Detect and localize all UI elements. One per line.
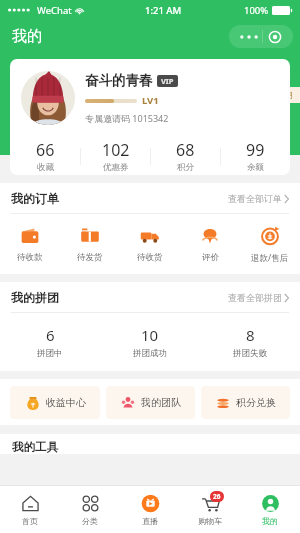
staticText: 专属邀请码 1015342	[85, 112, 169, 124]
staticText: 我的	[12, 27, 42, 46]
button[interactable]: 26	[180, 486, 240, 533]
staticText: 我的	[262, 516, 278, 526]
button[interactable]: 查看全部拼团	[228, 292, 289, 303]
button[interactable]: 6	[0, 313, 100, 371]
button[interactable]: 首页	[0, 486, 60, 533]
staticText: 26	[213, 492, 221, 501]
staticText: 我的拼团	[11, 290, 59, 305]
staticText: LV1	[142, 94, 159, 107]
staticText: 积分兑换	[236, 396, 276, 409]
staticText: 收藏	[37, 162, 54, 173]
staticText: 购物车	[198, 516, 222, 526]
staticText: 奋斗的青春	[85, 72, 153, 89]
staticText: 余额	[247, 162, 264, 173]
button[interactable]: 积分兑换	[201, 386, 290, 419]
button[interactable]: 查看全部订单	[228, 193, 289, 204]
button[interactable]: 评价	[180, 214, 240, 274]
button[interactable]: 66	[10, 137, 80, 175]
button[interactable]: 8	[200, 313, 300, 371]
staticText: 6	[46, 325, 55, 345]
staticText: 拼团成功	[133, 348, 167, 359]
staticText: 8	[246, 325, 255, 345]
staticText: 拼团失败	[233, 348, 267, 359]
staticText: 分类	[82, 516, 98, 526]
staticText: 积分	[177, 162, 194, 173]
button[interactable]: 我的	[240, 486, 300, 533]
staticText: 查看全部订单	[228, 193, 282, 204]
button[interactable]: 我的团队	[106, 386, 195, 419]
staticText: 等级说明	[261, 90, 293, 100]
staticText: 首页	[22, 516, 38, 526]
button[interactable]: 待发货	[60, 214, 120, 274]
button[interactable]: 退款/售后	[240, 214, 300, 274]
staticText: 退款/售后	[251, 252, 289, 264]
button[interactable]: Mini program menu	[229, 25, 293, 48]
staticText: 待收款	[17, 252, 43, 263]
staticText: 68	[176, 139, 195, 161]
staticText: 收益中心	[46, 396, 86, 409]
staticText: 待收货	[137, 252, 163, 263]
button[interactable]: 99	[221, 137, 290, 175]
staticText: VIP	[161, 76, 174, 86]
staticText: 我的团队	[141, 396, 181, 409]
staticText: 我的订单	[11, 191, 59, 206]
staticText: 我的工具	[12, 440, 58, 454]
staticText: 66	[36, 139, 55, 161]
button[interactable]: 等级说明	[253, 87, 300, 103]
button[interactable]: 收益中心	[10, 386, 100, 419]
staticText: 拼团中	[37, 348, 63, 359]
staticText: 10	[141, 325, 159, 345]
button[interactable]: 68	[151, 137, 220, 175]
button[interactable]: 待收款	[0, 214, 60, 274]
button[interactable]: 直播	[120, 486, 180, 533]
button[interactable]: 102	[81, 137, 150, 175]
staticText: WeChat	[37, 4, 72, 17]
button[interactable]: 分类	[60, 486, 120, 533]
staticText: 待发货	[77, 252, 103, 263]
button[interactable]: 待收货	[120, 214, 180, 274]
staticText: 99	[246, 139, 265, 161]
staticText: 102	[102, 139, 130, 161]
staticText: 100%	[244, 4, 269, 17]
staticText: 1:21 AM	[145, 4, 182, 17]
staticText: 查看全部拼团	[228, 292, 282, 303]
staticText: 直播	[142, 516, 158, 526]
button[interactable]: 10	[100, 313, 200, 371]
staticText: 优惠券	[103, 162, 129, 173]
staticText: 评价	[202, 252, 219, 263]
